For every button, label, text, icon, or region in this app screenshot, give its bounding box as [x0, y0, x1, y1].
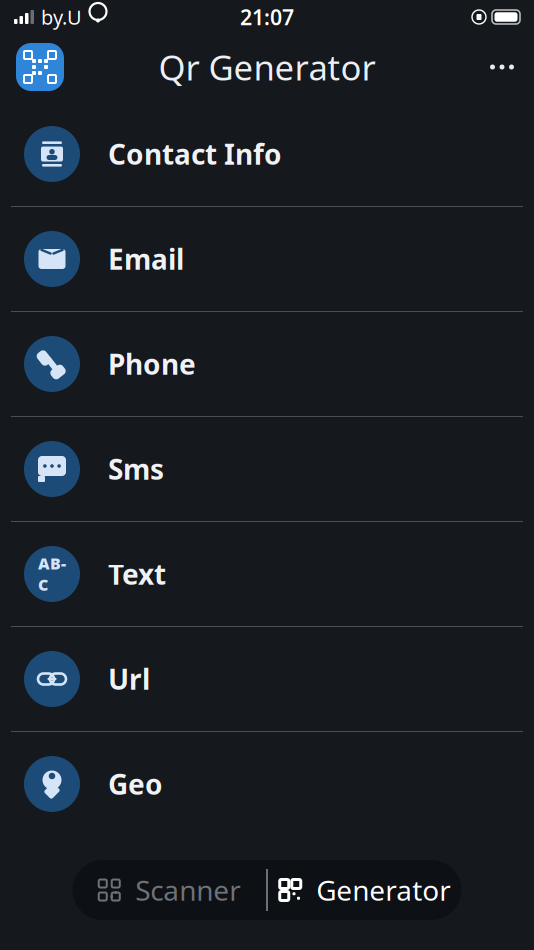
staticText: Generator [316, 871, 451, 909]
staticText: Phone [108, 345, 196, 383]
button[interactable]: Scanner [72, 860, 266, 920]
staticText: Scanner [135, 871, 241, 909]
button[interactable]: Generator [268, 860, 462, 920]
staticText: ABC [38, 553, 66, 595]
staticText: Contact Info [108, 135, 282, 173]
button[interactable]: App icon [16, 43, 64, 91]
button[interactable]: Url [0, 627, 534, 731]
button[interactable]: ABC [0, 522, 534, 626]
button[interactable]: Geo [0, 732, 534, 836]
staticText: Qr Generator [158, 44, 375, 90]
staticText: by.U [41, 4, 82, 30]
button[interactable]: Contact Info [0, 102, 534, 206]
staticText: Email [108, 240, 184, 278]
button[interactable]: Sms [0, 417, 534, 521]
button[interactable]: Email [0, 207, 534, 311]
button[interactable]: More options [480, 45, 524, 89]
staticText: Geo [108, 765, 163, 803]
button[interactable]: Phone [0, 312, 534, 416]
staticText: Sms [108, 450, 164, 488]
staticText: 21:07 [240, 3, 294, 31]
staticText: Text [108, 555, 166, 593]
staticText: Url [108, 660, 150, 698]
